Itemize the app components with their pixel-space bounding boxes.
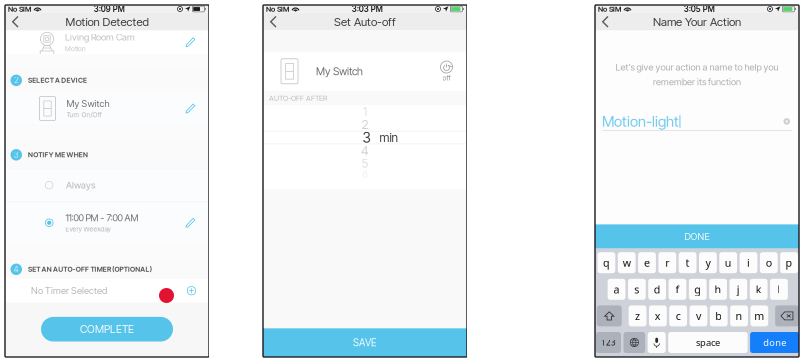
staticText: g — [694, 282, 701, 296]
button[interactable]: f — [668, 279, 686, 300]
staticText: y — [705, 256, 710, 270]
button[interactable]: s — [628, 279, 646, 300]
button[interactable]: DONE — [595, 224, 799, 249]
staticText: 3:03 PM — [352, 4, 383, 14]
staticText: Always — [66, 180, 95, 191]
staticText: Living Room Cam — [65, 32, 135, 43]
button[interactable]: o — [760, 252, 778, 273]
staticText: 5 — [361, 156, 368, 171]
staticText: j — [737, 282, 740, 296]
staticText: p — [786, 256, 793, 270]
staticText: No SIM — [8, 5, 31, 13]
staticText: h — [714, 282, 721, 296]
button[interactable]: h — [709, 279, 727, 300]
staticText: Motion-light — [602, 113, 679, 130]
button[interactable]: space — [668, 332, 748, 353]
button[interactable]: Next keyboard — [623, 332, 645, 353]
staticText: 6 — [362, 169, 367, 180]
staticText: 2 — [14, 75, 18, 85]
button[interactable]: d — [648, 279, 666, 300]
staticText: Let's give your action a name to help yo… — [615, 61, 778, 73]
staticText: COMPLETE — [80, 323, 134, 336]
button[interactable]: g — [689, 279, 707, 300]
button[interactable]: Back — [595, 13, 619, 31]
staticText: 4 — [361, 143, 369, 158]
button[interactable]: x — [649, 305, 667, 326]
staticText: No Timer Selected — [31, 285, 107, 296]
staticText: s — [634, 282, 639, 296]
button[interactable]: k — [750, 279, 768, 300]
staticText: 123 — [601, 337, 616, 348]
staticText: 3 — [362, 129, 370, 146]
button[interactable]: e — [638, 252, 656, 273]
staticText: Set Auto-off — [334, 15, 396, 29]
button[interactable]: m — [750, 305, 768, 326]
staticText: My Switch — [316, 65, 363, 78]
staticText: Name Your Action — [653, 15, 741, 29]
button[interactable]: l — [770, 279, 788, 300]
button[interactable]: w — [618, 252, 636, 273]
staticText: Motion — [65, 45, 86, 53]
staticText: Turn On/Off — [66, 111, 101, 119]
staticText: o — [766, 256, 772, 270]
staticText: 2 — [361, 117, 368, 132]
staticText: 3 — [14, 150, 19, 160]
staticText: r — [665, 256, 669, 270]
staticText: min — [379, 130, 397, 145]
staticText: space — [696, 336, 720, 349]
staticText: m — [754, 309, 764, 323]
staticText: 11:00 PM - 7:00 AM — [65, 212, 138, 224]
button[interactable]: COMPLETE — [41, 317, 173, 341]
staticText: 1 — [363, 104, 367, 119]
button[interactable]: c — [669, 305, 687, 326]
button[interactable]: SAVE — [263, 328, 467, 357]
staticText: NOTIFY ME WHEN — [28, 151, 88, 159]
staticText: 4 — [14, 264, 19, 274]
button[interactable]: j — [729, 279, 747, 300]
button[interactable]: done — [750, 332, 799, 353]
staticText: No SIM — [598, 5, 621, 13]
button[interactable]: Living Room Cam — [5, 30, 209, 54]
button[interactable]: Back — [263, 13, 287, 31]
staticText: l — [777, 282, 780, 296]
button[interactable]: p — [780, 252, 798, 273]
button[interactable]: i — [740, 252, 757, 273]
button[interactable]: r — [658, 252, 676, 273]
button[interactable]: q — [597, 252, 615, 273]
button[interactable]: u — [719, 252, 737, 273]
staticText: q — [603, 256, 610, 270]
staticText: Every Weekday — [65, 225, 110, 233]
staticText: No SIM — [266, 5, 289, 13]
button[interactable]: 123 — [596, 332, 621, 353]
staticText: i — [747, 256, 750, 270]
staticText: AUTO-OFF AFTER — [269, 94, 327, 102]
staticText: My Switch — [66, 98, 109, 109]
button[interactable]: Dictation — [648, 332, 666, 353]
button[interactable]: z — [629, 305, 646, 326]
button[interactable]: Clear text — [781, 116, 792, 127]
button[interactable]: y — [699, 252, 717, 273]
staticText: DONE — [684, 231, 709, 242]
staticText: n — [735, 309, 742, 323]
button[interactable]: My Switch — [5, 92, 209, 125]
button[interactable]: t — [679, 252, 696, 273]
button[interactable]: Delete — [775, 305, 799, 326]
staticText: remember its function — [653, 76, 741, 88]
staticText: x — [655, 309, 661, 323]
staticText: d — [654, 282, 661, 296]
button[interactable]: 11:00 PM - 7:00 AM — [5, 202, 209, 243]
button[interactable]: b — [710, 305, 728, 326]
button[interactable]: a — [608, 279, 625, 300]
staticText: SAVE — [353, 337, 377, 349]
button[interactable]: v — [689, 305, 707, 326]
staticText: k — [756, 282, 762, 296]
staticText: t — [686, 256, 690, 270]
button[interactable]: Always — [5, 169, 209, 202]
staticText: b — [715, 309, 722, 323]
button[interactable]: No Timer Selected — [5, 279, 209, 302]
button[interactable]: Shift — [597, 305, 622, 326]
staticText: u — [725, 256, 732, 270]
button[interactable]: Back — [5, 13, 29, 31]
button[interactable]: n — [730, 305, 748, 326]
staticText: f — [675, 282, 679, 296]
